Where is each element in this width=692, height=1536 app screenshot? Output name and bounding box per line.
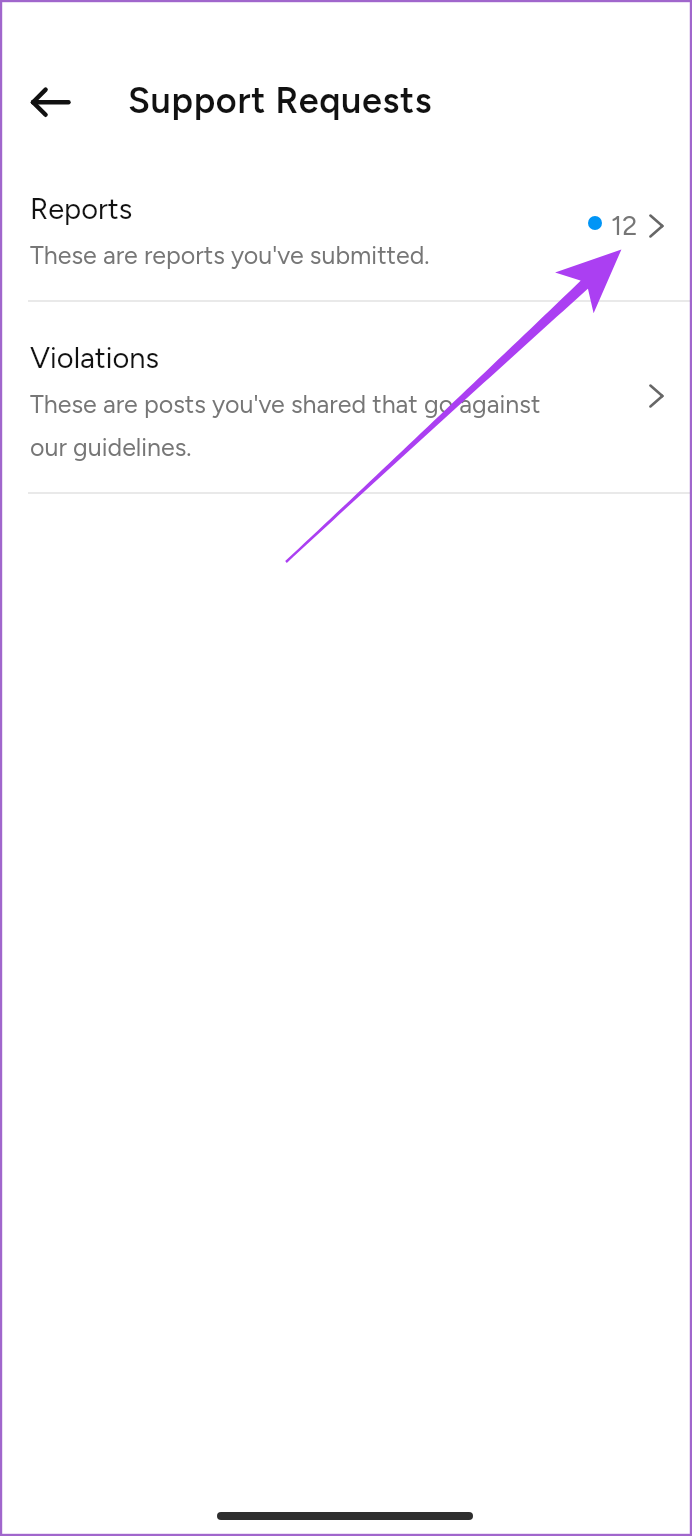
button[interactable]: Back: [14, 70, 86, 142]
staticText: 12: [611, 209, 638, 241]
button[interactable]: Reports: [0, 178, 692, 300]
staticText: These are posts you've shared that go ag…: [30, 389, 576, 463]
staticText: Reports: [30, 191, 133, 226]
staticText: Support Requests: [128, 79, 433, 122]
button[interactable]: Violations: [0, 301, 692, 492]
staticText: These are reports you've submitted.: [30, 240, 430, 270]
staticText: Violations: [30, 340, 160, 375]
